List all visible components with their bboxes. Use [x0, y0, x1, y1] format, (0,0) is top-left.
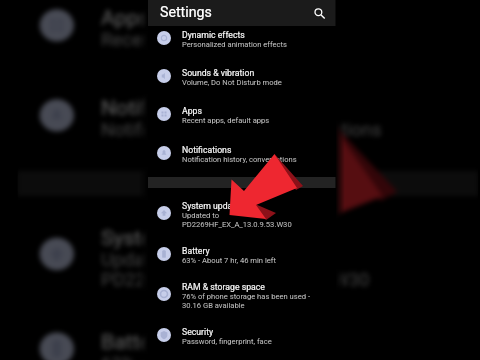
staticText: Notifications — [182, 145, 232, 155]
staticText: Dynamic effects — [182, 30, 245, 40]
button[interactable]: Search — [312, 6, 326, 20]
staticText: System update — [182, 201, 240, 211]
staticText: Notification history, conversations — [182, 155, 297, 164]
staticText: 63% - About 7 hr, 46 min left — [182, 256, 276, 265]
staticText: Recent apps, default apps — [101, 30, 316, 51]
button[interactable]: Sounds & vibration — [148, 58, 336, 94]
staticText: 76% of phone storage has been used - — [182, 292, 311, 301]
staticText: Apps — [101, 7, 150, 30]
staticText: Updated to — [101, 249, 194, 270]
button[interactable]: RAM & storage space — [148, 274, 336, 314]
staticText: Personalized animation effects — [182, 40, 287, 49]
staticText: Sounds & vibration — [182, 68, 255, 78]
staticText: Battery — [101, 330, 169, 353]
button[interactable]: Notifications — [148, 135, 336, 171]
button[interactable]: Security — [148, 317, 336, 353]
staticText: Settings — [160, 4, 212, 21]
staticText: Security — [182, 327, 214, 337]
staticText: System update — [101, 226, 243, 249]
staticText: Volume, Do Not Disturb mode — [182, 78, 282, 87]
staticText: 30.16 GB available — [182, 301, 245, 310]
staticText: RAM & storage space — [182, 282, 265, 292]
staticText: Apps — [182, 106, 202, 116]
button[interactable]: System update — [148, 193, 336, 233]
staticText: Updated to — [182, 211, 220, 220]
staticText: Recent apps, default apps — [182, 116, 270, 125]
staticText: Password, fingerprint, face — [182, 337, 272, 346]
button[interactable]: Battery — [148, 236, 336, 272]
staticText: 63% - About 7 hr, 46 min left — [101, 353, 331, 360]
staticText: Notification history, conversations — [101, 120, 383, 141]
staticText: Battery — [182, 246, 210, 256]
button[interactable]: Dynamic effects — [148, 20, 336, 56]
staticText: Notifications — [101, 97, 223, 120]
staticText: PD2269HF_EX_A_13.0.9.53.W30 — [182, 220, 292, 229]
staticText: PD2269HF_EX_A_13.0.9.53.W30 — [101, 270, 370, 291]
button[interactable]: Apps — [148, 96, 336, 132]
